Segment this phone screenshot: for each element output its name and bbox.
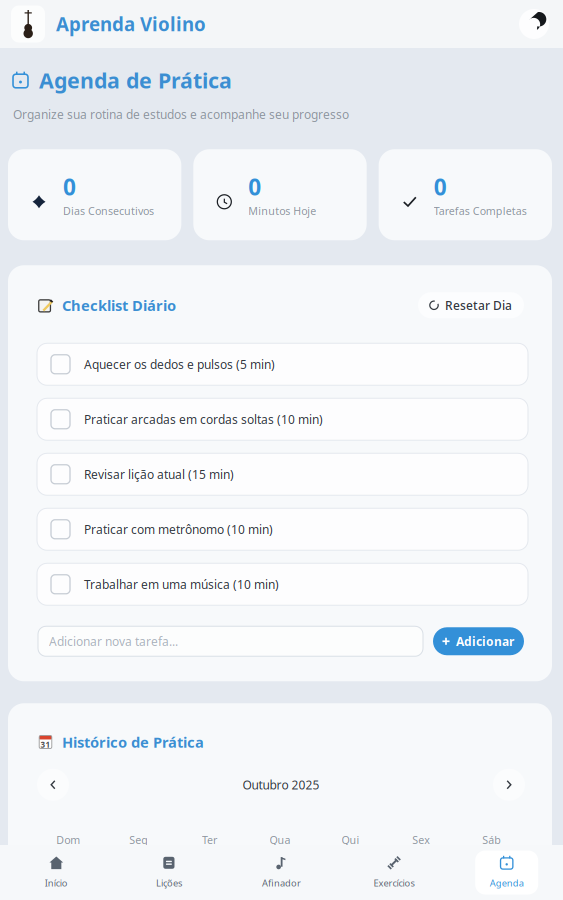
button[interactable]: Início [25,850,88,894]
staticText: Aprenda Violino [56,12,206,36]
staticText: Resetar Dia [445,297,512,313]
staticText: Aquecer os dedos e pulsos (5 min) [84,356,275,372]
staticText: Início [45,877,68,889]
button[interactable]: Lições [137,850,200,894]
button[interactable]: Exercícios [363,850,426,894]
button[interactable]: Trabalhar em uma música (10 min) [37,563,528,605]
staticText: Dom [56,833,80,847]
button[interactable]: Resetar Dia [418,292,524,318]
staticText: Tarefas Completas [434,204,527,218]
staticText: 0 [248,172,261,202]
staticText: Checklist Diário [62,295,176,315]
button[interactable]: Praticar com metrônomo (10 min) [37,508,528,550]
button[interactable]: Revisar lição atual (15 min) [37,453,528,495]
staticText: Trabalhar em uma música (10 min) [84,576,279,592]
staticText: Agenda de Prática [39,66,232,94]
button[interactable]: Aquecer os dedos e pulsos (5 min) [37,343,528,385]
staticText: Organize sua rotina de estudos e acompan… [13,106,349,122]
staticText: Ter [202,833,217,847]
button[interactable]: Agenda [475,850,538,894]
staticText: Revisar lição atual (15 min) [84,466,234,482]
staticText: Praticar arcadas em cordas soltas (10 mi… [84,411,323,427]
button[interactable]: Próximo mês [493,769,525,801]
staticText: Agenda [490,877,524,889]
staticText: Minutos Hoje [248,204,316,218]
staticText: Seg [129,833,148,847]
staticText: Dias Consecutivos [63,204,154,218]
staticText: Outubro 2025 [242,777,319,793]
staticText: Lições [156,877,182,889]
staticText: Afinador [262,877,301,889]
button[interactable]: Alternar modo escuro [519,9,549,39]
staticText: Sex [412,833,430,847]
button[interactable]: Adicionar [433,627,524,655]
staticText: Praticar com metrônomo (10 min) [84,521,273,537]
staticText: Sáb [482,833,501,847]
staticText: Qui [342,833,360,847]
button[interactable]: Mês anterior [37,769,69,801]
button[interactable]: Aprenda Violino [11,5,206,42]
staticText: Exercícios [374,877,415,889]
staticText: 0 [63,172,76,202]
staticText: Adicionar [456,633,514,649]
staticText: Adicionar nova tarefa... [49,633,178,649]
button[interactable]: Afinador [250,850,313,894]
staticText: 0 [434,172,447,202]
staticText: Histórico de Prática [62,732,204,752]
staticText: 31 [40,739,50,750]
staticText: Qua [269,833,290,847]
button[interactable]: Praticar arcadas em cordas soltas (10 mi… [37,398,528,440]
